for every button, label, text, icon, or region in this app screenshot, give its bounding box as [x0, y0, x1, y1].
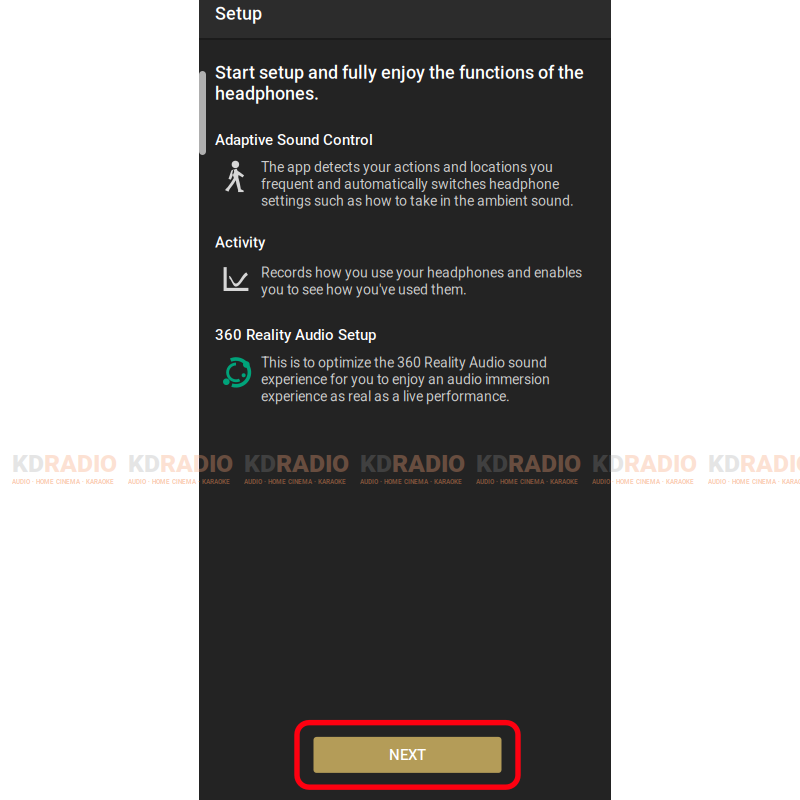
staticText: RADIO [392, 449, 465, 478]
staticText: The app detects your actions and locatio… [261, 159, 574, 209]
staticText: KD [476, 449, 508, 478]
staticText: Adaptive Sound Control [215, 131, 373, 149]
staticText: KD [360, 449, 392, 478]
staticText: AUDIO · HOME CINEMA · KARAOKE [592, 478, 694, 485]
staticText: NEXT [389, 746, 426, 764]
staticText: Activity [215, 233, 265, 251]
staticText: Start setup and fully enjoy the function… [215, 62, 584, 104]
button[interactable]: NEXT [313, 737, 501, 773]
button[interactable]: Setup [199, 3, 611, 41]
staticText: 360 Reality Audio Setup [215, 326, 376, 344]
staticText: Setup [215, 3, 262, 24]
staticText: RADIO [44, 449, 117, 478]
staticText: KD [128, 449, 160, 478]
staticText: AUDIO · HOME CINEMA · KARAOKE [708, 478, 800, 485]
staticText: AUDIO · HOME CINEMA · KARAOKE [360, 478, 462, 485]
staticText: RADIO [508, 449, 581, 478]
staticText: KD [592, 449, 624, 478]
staticText: RADIO [276, 449, 349, 478]
staticText: AUDIO · HOME CINEMA · KARAOKE [128, 478, 230, 485]
staticText: AUDIO · HOME CINEMA · KARAOKE [12, 478, 114, 485]
staticText: AUDIO · HOME CINEMA · KARAOKE [244, 478, 346, 485]
staticText: KD [12, 449, 44, 478]
staticText: RADIO [740, 449, 800, 478]
staticText: AUDIO · HOME CINEMA · KARAOKE [476, 478, 578, 485]
staticText: Records how you use your headphones and … [261, 264, 582, 298]
staticText: KD [708, 449, 740, 478]
staticText: RADIO [160, 449, 233, 478]
staticText: This is to optimize the 360 Reality Audi… [261, 354, 550, 405]
staticText: RADIO [624, 449, 697, 478]
staticText: KD [244, 449, 276, 478]
